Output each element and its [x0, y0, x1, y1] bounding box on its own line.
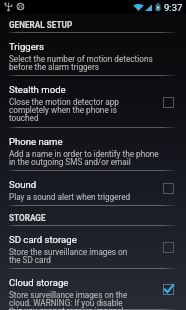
staticText: Store the surveillance images on the SD …: [9, 247, 128, 265]
button[interactable]: Triggers: [0, 33, 186, 76]
staticText: Stealth mode: [9, 84, 66, 95]
button[interactable]: SD card storage: [0, 226, 186, 269]
staticText: Sound: [9, 179, 37, 190]
staticText: Add a name in order to identify the phon…: [9, 149, 159, 167]
button[interactable]: Cloud storage: [0, 269, 186, 310]
other: Notifications: [0, 0, 28, 13]
staticText: 9:37: [164, 2, 183, 13]
staticText: Play a sound alert when triggered: [9, 192, 131, 202]
staticText: GENERAL SETUP: [9, 20, 73, 30]
staticText: Phone name: [9, 136, 63, 147]
staticText: SD card storage: [9, 234, 77, 245]
button[interactable]: Stealth mode: [0, 76, 186, 128]
button[interactable]: Phone name: [0, 128, 186, 171]
staticText: STORAGE: [9, 213, 46, 223]
staticText: Triggers: [9, 41, 45, 52]
staticText: Cloud storage: [9, 277, 69, 288]
staticText: Store surveillance images on the cloud. …: [9, 290, 128, 310]
button[interactable]: Sound: [0, 171, 186, 206]
staticText: Close the motion detector app completely…: [9, 97, 119, 123]
staticText: Select the number of motion detections b…: [9, 54, 153, 72]
